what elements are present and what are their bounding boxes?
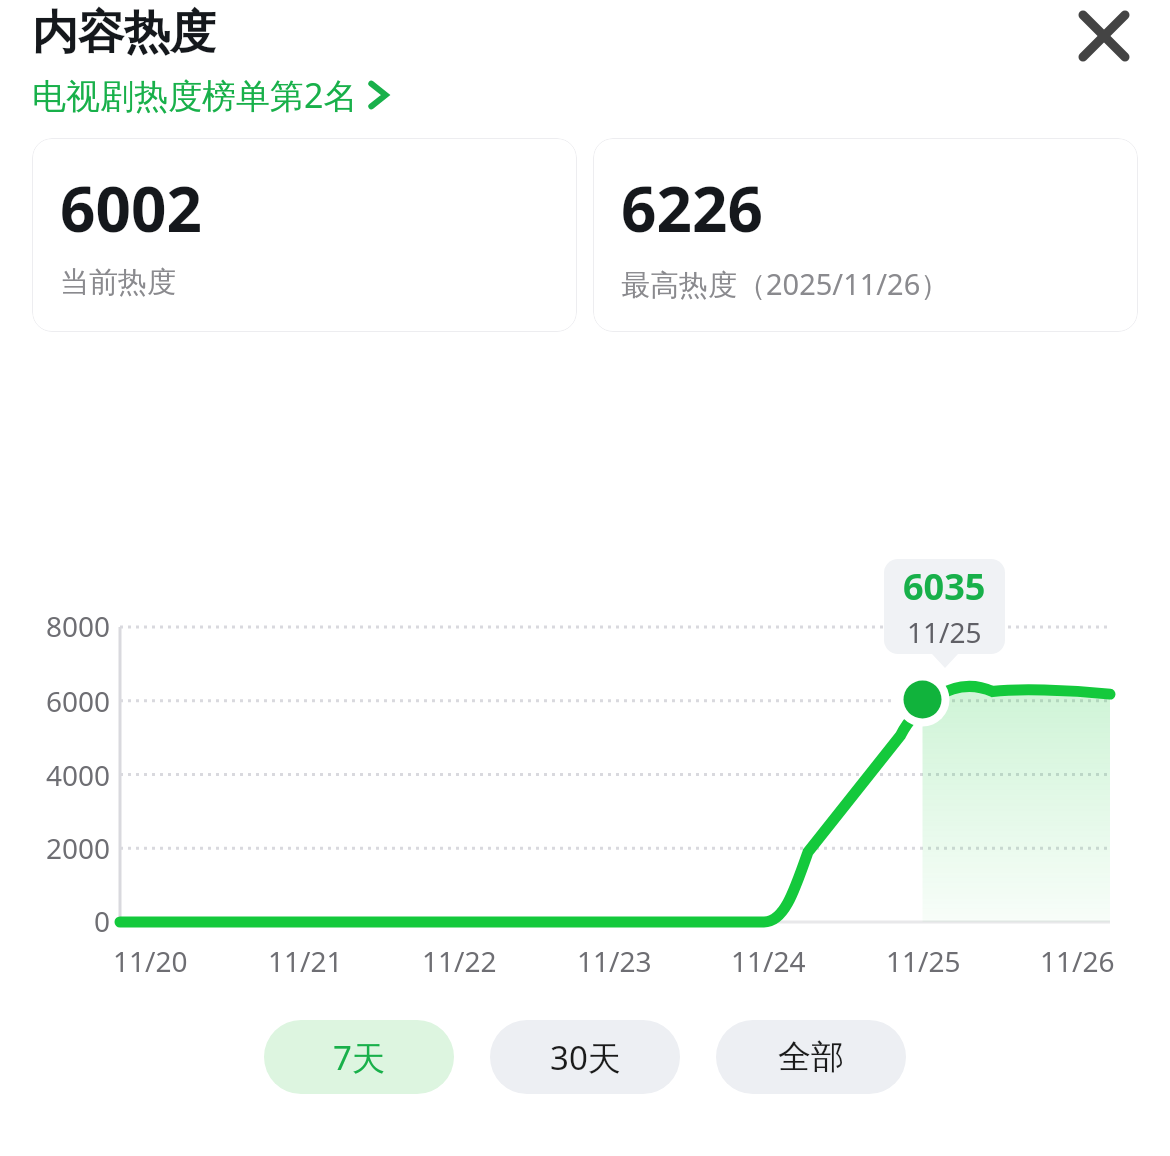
staticText: 电视剧热度榜单第2名 [32, 72, 358, 118]
staticText: 11/26 [1040, 942, 1115, 980]
staticText: 11/20 [113, 942, 188, 980]
staticText: 4000 [45, 756, 110, 794]
staticText: 8000 [45, 607, 110, 645]
staticText: 11/25 [907, 613, 982, 651]
staticText: 全部 [778, 1036, 844, 1078]
staticText: 6035 [903, 562, 986, 611]
button[interactable]: 30天 [490, 1020, 680, 1094]
staticText: 2000 [45, 829, 110, 867]
staticText: 最高热度（2025/11/26） [621, 264, 950, 304]
staticText: 6000 [45, 682, 110, 720]
staticText: 7天 [333, 1035, 385, 1080]
staticText: 30天 [550, 1035, 621, 1080]
staticText: 6002 [60, 166, 202, 250]
staticText: 0 [93, 902, 110, 940]
button[interactable]: 6226 [593, 138, 1138, 332]
button[interactable]: Close [1068, 0, 1140, 72]
button[interactable]: 6002 [32, 138, 577, 332]
staticText: 11/22 [422, 942, 497, 980]
button[interactable]: 全部 [716, 1020, 906, 1094]
staticText: 6226 [621, 166, 763, 250]
staticText: 内容热度 [32, 4, 216, 62]
staticText: 当前热度 [60, 264, 176, 301]
staticText: 11/24 [731, 942, 806, 980]
staticText: 11/21 [268, 942, 343, 980]
staticText: 11/23 [577, 942, 652, 980]
staticText: 11/25 [886, 942, 961, 980]
button[interactable]: 电视剧热度榜单第2名 [32, 72, 390, 118]
button[interactable]: 7天 [264, 1020, 454, 1094]
